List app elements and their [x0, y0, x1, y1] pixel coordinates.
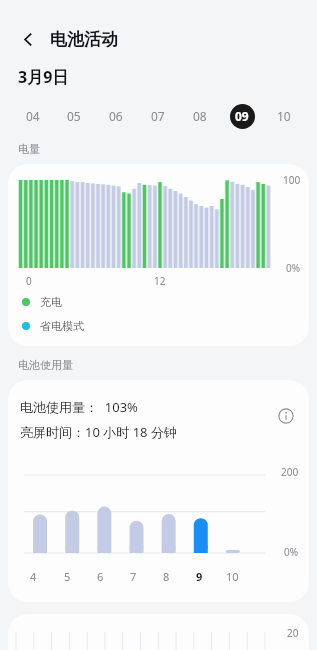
button[interactable]: Info [273, 398, 299, 434]
staticText: 7 [130, 569, 137, 584]
staticText: 100 [283, 173, 301, 187]
staticText: 亮屏时间：10 小时 18 分钟 [20, 423, 177, 441]
staticText: 05 [67, 108, 81, 124]
button[interactable]: 10 [263, 100, 305, 132]
staticText: 10 [226, 569, 239, 584]
staticText: 0% [284, 545, 299, 559]
staticText: 07 [151, 108, 165, 124]
staticText: 0 [26, 274, 32, 288]
staticText: 电池活动 [50, 29, 118, 50]
staticText: 电池使用量： 103% [20, 398, 138, 416]
button[interactable]: 08 [179, 100, 221, 132]
button[interactable]: 06 [95, 100, 137, 132]
staticText: 电池使用量 [18, 358, 73, 372]
staticText: 20 [287, 626, 299, 640]
button[interactable]: 09 [221, 100, 263, 132]
button[interactable]: 05 [53, 100, 95, 132]
button[interactable]: 04 [12, 100, 53, 132]
staticText: 08 [193, 108, 207, 124]
staticText: 8 [163, 569, 170, 584]
button[interactable]: 省电模式 [22, 318, 309, 334]
staticText: 充电 [40, 295, 62, 309]
staticText: 04 [26, 108, 40, 124]
button[interactable]: 充电 [22, 294, 309, 310]
staticText: 3月9日 [18, 66, 69, 88]
staticText: 电量 [18, 142, 40, 156]
staticText: 省电模式 [40, 319, 84, 333]
staticText: 0% [286, 261, 301, 275]
button[interactable]: 20 [8, 614, 309, 650]
staticText: 12 [154, 274, 166, 288]
button[interactable]: Back [12, 23, 44, 55]
button[interactable]: 07 [137, 100, 179, 132]
button[interactable]: 100 [8, 164, 309, 346]
button[interactable]: 电池使用量： 103% [8, 380, 309, 602]
staticText: 06 [109, 108, 123, 124]
staticText: 4 [30, 569, 37, 584]
staticText: 9 [196, 569, 203, 584]
staticText: 10 [277, 108, 291, 124]
staticText: 09 [235, 108, 249, 124]
staticText: 5 [64, 569, 71, 584]
staticText: 6 [97, 569, 104, 584]
staticText: 200 [281, 465, 299, 479]
